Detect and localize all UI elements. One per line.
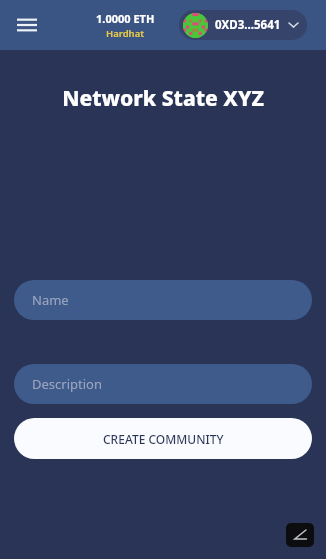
button[interactable]: Description bbox=[14, 364, 312, 404]
button[interactable]: Developer tools bbox=[286, 523, 314, 547]
staticText: Network State XYZ bbox=[0, 84, 326, 113]
button[interactable]: CREATE COMMUNITY bbox=[14, 418, 312, 459]
staticText: CREATE COMMUNITY bbox=[103, 431, 224, 447]
button[interactable]: Name bbox=[14, 280, 312, 320]
staticText: 1.0000 ETH bbox=[96, 11, 155, 26]
staticText: Description bbox=[32, 375, 102, 393]
staticText: Hardhat bbox=[106, 27, 145, 40]
staticText: Name bbox=[32, 291, 69, 309]
button[interactable]: Open menu bbox=[8, 6, 46, 44]
staticText: 0XD3...5641 bbox=[215, 17, 281, 33]
button[interactable]: 0XD3...5641 bbox=[179, 10, 307, 40]
